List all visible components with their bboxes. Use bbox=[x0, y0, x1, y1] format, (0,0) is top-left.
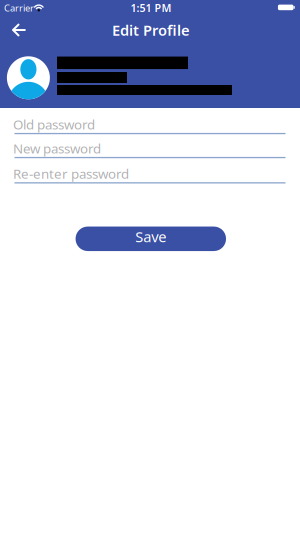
staticText: Carrier bbox=[4, 2, 34, 14]
staticText: Edit Profile bbox=[112, 20, 190, 40]
staticText: Save bbox=[135, 227, 166, 246]
button[interactable]: New password bbox=[14, 134, 285, 158]
staticText: Re-enter password bbox=[13, 165, 129, 182]
button[interactable]: Save bbox=[76, 227, 226, 251]
button[interactable] bbox=[3, 15, 37, 45]
button[interactable]: Old password bbox=[14, 110, 285, 134]
staticText: Old password bbox=[13, 115, 95, 133]
staticText: 1:51 PM bbox=[130, 1, 171, 15]
button[interactable]: Re-enter password bbox=[14, 159, 285, 183]
staticText: New password bbox=[13, 139, 101, 157]
